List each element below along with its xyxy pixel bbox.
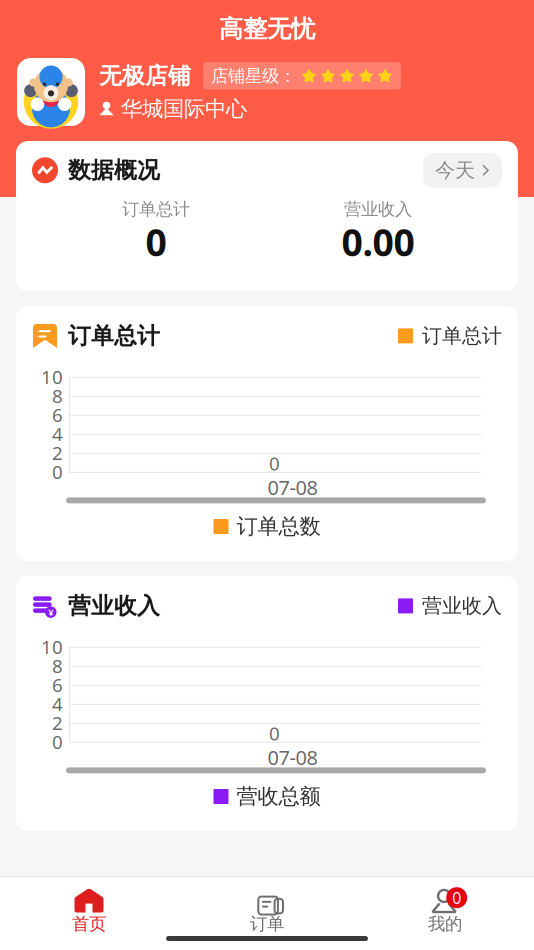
staticText: 8 xyxy=(52,653,63,678)
staticText: 0 xyxy=(269,451,280,476)
staticText: 订单总计 xyxy=(68,322,160,350)
staticText: 2 xyxy=(52,440,63,465)
button[interactable]: 首页 xyxy=(0,888,178,932)
staticText: 07-08 xyxy=(267,474,317,500)
staticText: 今天 xyxy=(435,158,475,183)
staticText: 订单 xyxy=(250,913,284,935)
staticText: 订单总数 xyxy=(236,513,320,540)
staticText: 营收总额 xyxy=(236,783,320,810)
button[interactable]: 今天 xyxy=(423,153,502,188)
staticText: 0 xyxy=(145,217,166,266)
staticText: 8 xyxy=(52,383,63,408)
staticText: 营业收入 xyxy=(68,592,160,620)
staticText: 6 xyxy=(52,402,63,427)
button[interactable]: 0 xyxy=(356,888,534,932)
staticText: 0.00 xyxy=(341,217,414,266)
staticText: 营业收入 xyxy=(422,594,502,618)
staticText: 07-08 xyxy=(267,744,317,770)
staticText: 0 xyxy=(52,459,63,484)
staticText: 营业收入 xyxy=(344,199,412,220)
staticText: 华城国际中心 xyxy=(121,96,247,122)
staticText: 0 xyxy=(452,887,461,908)
staticText: 高整无忧 xyxy=(219,14,315,44)
staticText: 店铺星级： xyxy=(211,65,296,87)
staticText: 订单总计 xyxy=(422,324,502,348)
staticText: 0 xyxy=(269,721,280,746)
staticText: 订单总计 xyxy=(122,199,190,220)
staticText: 数据概况 xyxy=(68,156,160,184)
staticText: 首页 xyxy=(72,913,106,935)
staticText: 2 xyxy=(52,710,63,735)
button[interactable]: 订单 xyxy=(178,888,356,932)
staticText: 6 xyxy=(52,672,63,697)
staticText: 4 xyxy=(52,421,63,446)
staticText: 无极店铺 xyxy=(99,62,191,90)
staticText: 0 xyxy=(52,729,63,754)
staticText: 10 xyxy=(41,634,63,659)
staticText: 我的 xyxy=(428,913,462,935)
staticText: 4 xyxy=(52,691,63,716)
staticText: ¥ xyxy=(48,606,53,618)
staticText: 10 xyxy=(41,364,63,389)
